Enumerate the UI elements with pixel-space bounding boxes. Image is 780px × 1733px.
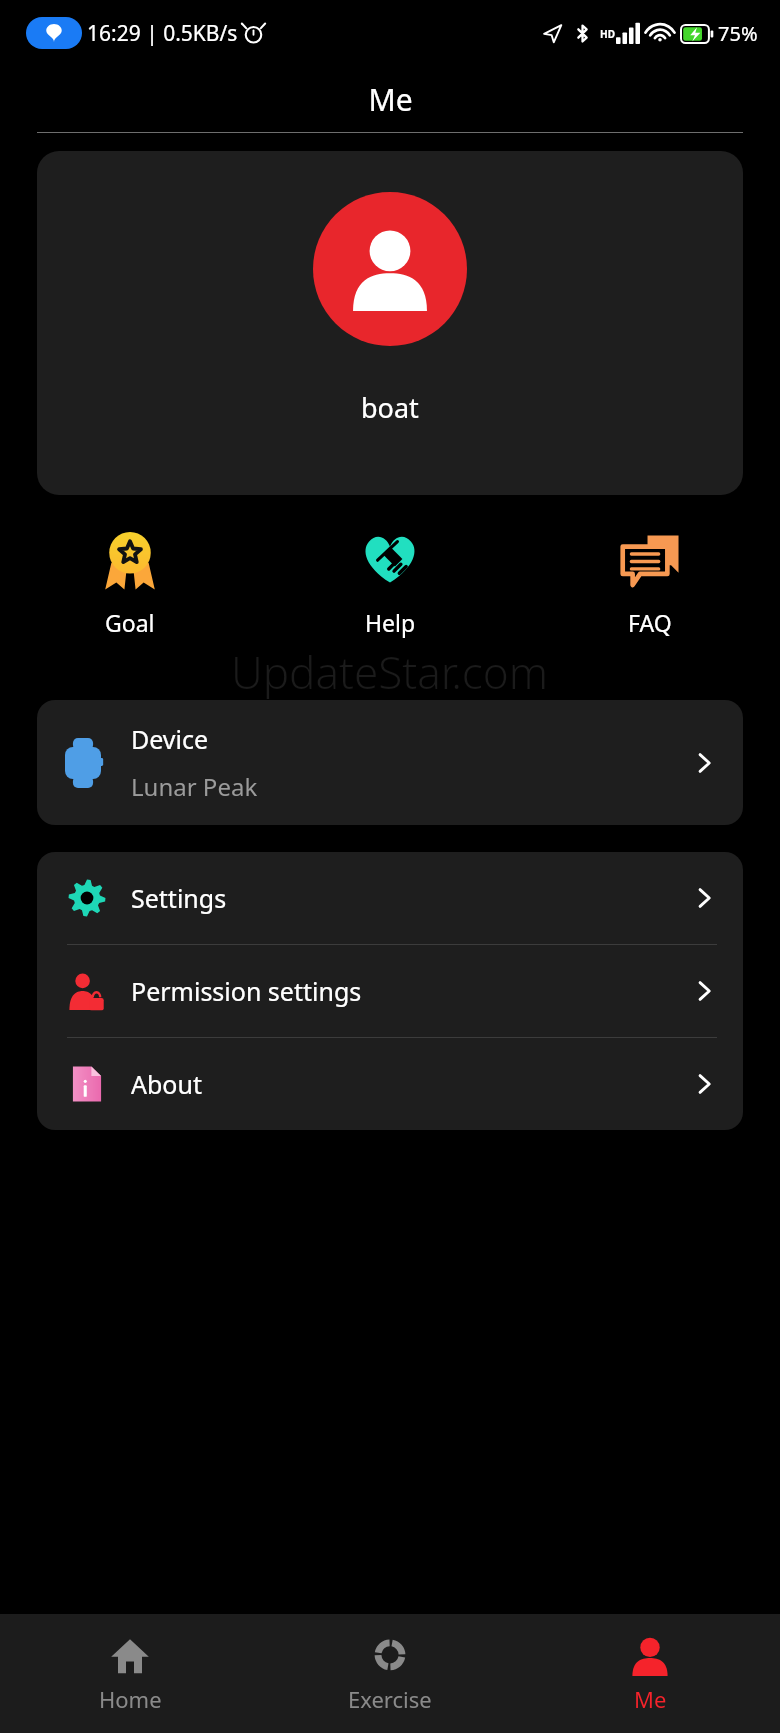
button[interactable]: About xyxy=(37,1038,743,1130)
other: Settings xyxy=(693,887,715,909)
staticText: boat xyxy=(361,389,419,426)
staticText: Me xyxy=(634,1684,667,1714)
button[interactable]: Permission settings xyxy=(37,945,743,1037)
staticText: Exercise xyxy=(348,1684,432,1714)
button[interactable]: Help xyxy=(260,524,520,642)
button[interactable]: Settings xyxy=(37,852,743,944)
staticText: Help xyxy=(365,607,416,638)
other: Permission settings xyxy=(693,980,715,1002)
staticText: Goal xyxy=(105,607,155,638)
staticText: Me xyxy=(368,79,413,120)
other: Open device xyxy=(693,752,715,774)
staticText: HD xyxy=(600,27,615,41)
button[interactable]: FAQ xyxy=(520,524,780,642)
staticText: UpdateStar.com xyxy=(231,642,549,700)
button[interactable]: Goal xyxy=(0,524,260,642)
button[interactable]: Exercise xyxy=(260,1614,520,1733)
staticText: About xyxy=(131,1067,693,1101)
other: About xyxy=(693,1073,715,1095)
staticText: Device xyxy=(131,722,209,756)
staticText: 16:29 | 0.5KB/s xyxy=(87,19,238,48)
button[interactable]: Device xyxy=(37,700,743,825)
staticText: FAQ xyxy=(628,607,672,638)
button[interactable]: Home xyxy=(0,1614,260,1733)
button[interactable]: boat xyxy=(37,151,743,495)
staticText: Settings xyxy=(131,881,693,915)
staticText: Lunar Peak xyxy=(131,770,258,803)
button[interactable]: Me xyxy=(520,1614,780,1733)
staticText: 75% xyxy=(718,20,758,47)
staticText: Home xyxy=(99,1684,162,1714)
staticText: Permission settings xyxy=(131,974,693,1008)
